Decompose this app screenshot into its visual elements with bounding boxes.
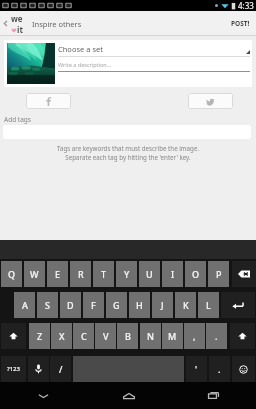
button[interactable]: Back bbox=[0, 11, 26, 36]
staticText: / bbox=[59, 363, 63, 375]
staticText: I bbox=[171, 268, 175, 280]
staticText: M bbox=[168, 330, 177, 342]
staticText: T bbox=[101, 268, 107, 280]
staticText: we bbox=[11, 13, 23, 24]
button[interactable]: . bbox=[206, 323, 227, 349]
button[interactable]: M bbox=[162, 323, 183, 349]
button[interactable]: B bbox=[117, 323, 138, 349]
staticText: V bbox=[103, 330, 109, 342]
button[interactable]: Share on Facebook bbox=[26, 93, 71, 109]
button[interactable]: T bbox=[93, 261, 114, 287]
button[interactable]: Hide keyboard bbox=[0, 382, 86, 409]
button[interactable]: K bbox=[175, 292, 196, 318]
button[interactable]: H bbox=[129, 292, 150, 318]
staticText: Tags are keywords that must describe the… bbox=[0, 144, 256, 162]
staticText: X bbox=[59, 330, 65, 342]
button[interactable]: L bbox=[198, 292, 219, 318]
staticText: F bbox=[91, 299, 96, 311]
button[interactable]: O bbox=[185, 261, 206, 287]
button[interactable]: Recent apps bbox=[171, 382, 256, 409]
staticText: . bbox=[218, 363, 221, 375]
button[interactable]: Voice input bbox=[28, 356, 49, 382]
button[interactable]: Backspace bbox=[232, 261, 256, 287]
staticText: J bbox=[161, 299, 164, 311]
staticText: R bbox=[78, 268, 84, 280]
staticText: Inspire others bbox=[32, 19, 82, 29]
button[interactable]: Photo bbox=[7, 43, 55, 84]
staticText: Y bbox=[124, 268, 130, 280]
staticText: , bbox=[193, 330, 196, 342]
button[interactable]: J bbox=[152, 292, 173, 318]
button[interactable]: Home bbox=[86, 382, 171, 409]
button[interactable]: A bbox=[14, 292, 35, 318]
button[interactable]: POST! bbox=[225, 11, 256, 36]
button[interactable]: S bbox=[37, 292, 58, 318]
staticText: W bbox=[30, 268, 39, 280]
button[interactable]: Shift bbox=[1, 323, 26, 349]
staticText: it bbox=[17, 24, 23, 35]
button[interactable]: Choose a set bbox=[58, 40, 250, 56]
button[interactable]: Y bbox=[116, 261, 137, 287]
staticText: Z bbox=[37, 330, 43, 342]
staticText: G bbox=[113, 299, 120, 311]
button[interactable]: R bbox=[70, 261, 91, 287]
staticText: K bbox=[183, 299, 189, 311]
button[interactable]: F bbox=[83, 292, 104, 318]
button[interactable]: Share on Twitter bbox=[188, 93, 233, 109]
button[interactable]: I bbox=[162, 261, 183, 287]
staticText: B bbox=[125, 330, 131, 342]
button[interactable]: ?123 bbox=[1, 356, 26, 382]
staticText: C bbox=[81, 330, 87, 342]
button[interactable]: Emoji bbox=[232, 356, 255, 382]
staticText: O bbox=[192, 268, 200, 280]
button[interactable]: / bbox=[50, 356, 71, 382]
button[interactable]: Z bbox=[29, 323, 50, 349]
staticText: Write a description... bbox=[58, 61, 112, 68]
button[interactable]: ' bbox=[186, 356, 207, 382]
button[interactable]: P bbox=[208, 261, 229, 287]
staticText: D bbox=[67, 299, 74, 311]
staticText: L bbox=[206, 299, 211, 311]
button[interactable]: , bbox=[184, 323, 205, 349]
button[interactable]: . bbox=[209, 356, 230, 382]
staticText: ' bbox=[195, 363, 198, 375]
staticText: Choose a set bbox=[58, 44, 103, 54]
staticText: P bbox=[216, 268, 222, 280]
staticText: ?123 bbox=[7, 365, 20, 373]
staticText: Q bbox=[8, 268, 16, 280]
button[interactable]: C bbox=[73, 323, 94, 349]
button[interactable]: Enter bbox=[221, 292, 255, 318]
button[interactable]: N bbox=[140, 323, 161, 349]
staticText: . bbox=[215, 330, 218, 342]
staticText: E bbox=[55, 268, 61, 280]
button[interactable]: E bbox=[47, 261, 68, 287]
staticText: POST! bbox=[231, 19, 250, 28]
staticText: Add tags bbox=[4, 115, 31, 124]
staticText: N bbox=[147, 330, 154, 342]
button[interactable]: Write a description... bbox=[58, 57, 250, 71]
button[interactable]: Q bbox=[1, 261, 22, 287]
button[interactable]: G bbox=[106, 292, 127, 318]
staticText: A bbox=[22, 299, 28, 311]
staticText: H bbox=[136, 299, 143, 311]
button[interactable]: U bbox=[139, 261, 160, 287]
staticText: 4:33 bbox=[238, 0, 254, 11]
button[interactable]: V bbox=[95, 323, 116, 349]
button[interactable]: D bbox=[60, 292, 81, 318]
staticText: U bbox=[146, 268, 153, 280]
button[interactable]: X bbox=[51, 323, 72, 349]
staticText: S bbox=[45, 299, 50, 311]
button[interactable]: W bbox=[24, 261, 45, 287]
button[interactable]: Shift bbox=[230, 323, 255, 349]
